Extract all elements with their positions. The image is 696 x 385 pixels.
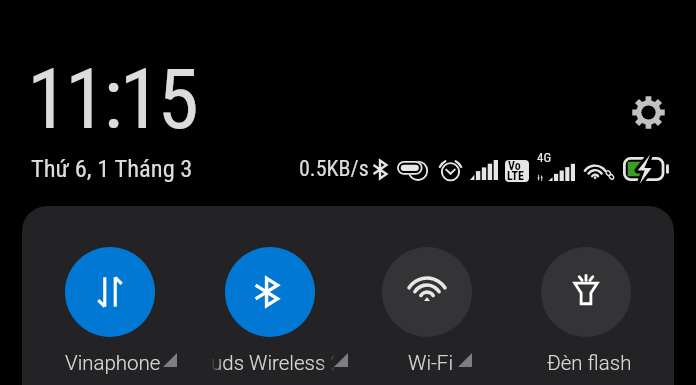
button[interactable]: Vinaphone	[23, 347, 203, 379]
button[interactable]: Wi-Fi	[340, 347, 520, 379]
button[interactable]: uds Wireless 2	[225, 247, 315, 337]
staticText: Thứ 6, 1 Tháng 3	[31, 154, 193, 183]
button[interactable]: Đèn flash	[499, 347, 679, 379]
staticText: 11:15	[27, 50, 196, 148]
button[interactable]: Wi-Fi	[382, 247, 472, 337]
staticText: LTE	[507, 169, 524, 182]
staticText: Wi-Fi	[408, 351, 453, 375]
staticText: Đèn flash	[547, 351, 632, 375]
staticText: Vinaphone	[65, 351, 161, 375]
staticText: Vo	[508, 160, 521, 173]
button[interactable]: Đèn flash	[541, 247, 631, 337]
button[interactable]: uds Wireless 2	[183, 347, 363, 379]
button[interactable]: Settings	[630, 94, 667, 131]
button[interactable]: Vinaphone	[65, 247, 155, 337]
staticText: 0.5KB/s	[299, 156, 369, 182]
staticText: uds Wireless 2	[211, 351, 335, 375]
staticText: 4G	[537, 150, 552, 165]
